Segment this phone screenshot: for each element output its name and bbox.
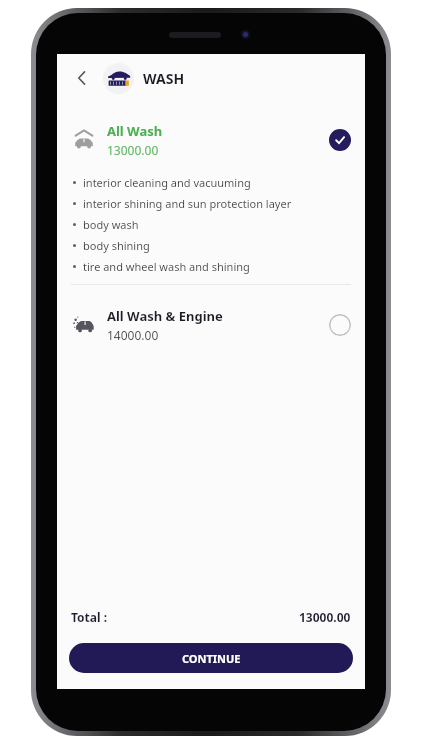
button[interactable]: Back bbox=[67, 63, 97, 93]
staticText: Total : bbox=[71, 609, 108, 625]
button[interactable]: Selected All Wash bbox=[329, 129, 351, 151]
staticText: body shining bbox=[83, 238, 150, 253]
staticText: WASH bbox=[143, 69, 185, 88]
staticText: All Wash & Engine bbox=[107, 307, 223, 325]
staticText: body wash bbox=[83, 217, 139, 232]
staticText: 13000.00 bbox=[107, 142, 159, 158]
button[interactable]: All Wash & Engine bbox=[57, 299, 365, 351]
staticText: 14000.00 bbox=[107, 327, 159, 343]
staticText: tire and wheel wash and shining bbox=[83, 259, 250, 274]
button[interactable]: Select All Wash and Engine bbox=[329, 314, 351, 336]
button[interactable]: All Wash bbox=[57, 118, 365, 283]
staticText: interior shining and sun protection laye… bbox=[83, 196, 292, 211]
staticText: CONTINUE bbox=[182, 651, 241, 666]
staticText: interior cleaning and vacuuming bbox=[83, 175, 251, 190]
button[interactable]: CONTINUE bbox=[69, 643, 353, 673]
staticText: All Wash bbox=[107, 122, 163, 140]
staticText: 13000.00 bbox=[299, 609, 351, 625]
